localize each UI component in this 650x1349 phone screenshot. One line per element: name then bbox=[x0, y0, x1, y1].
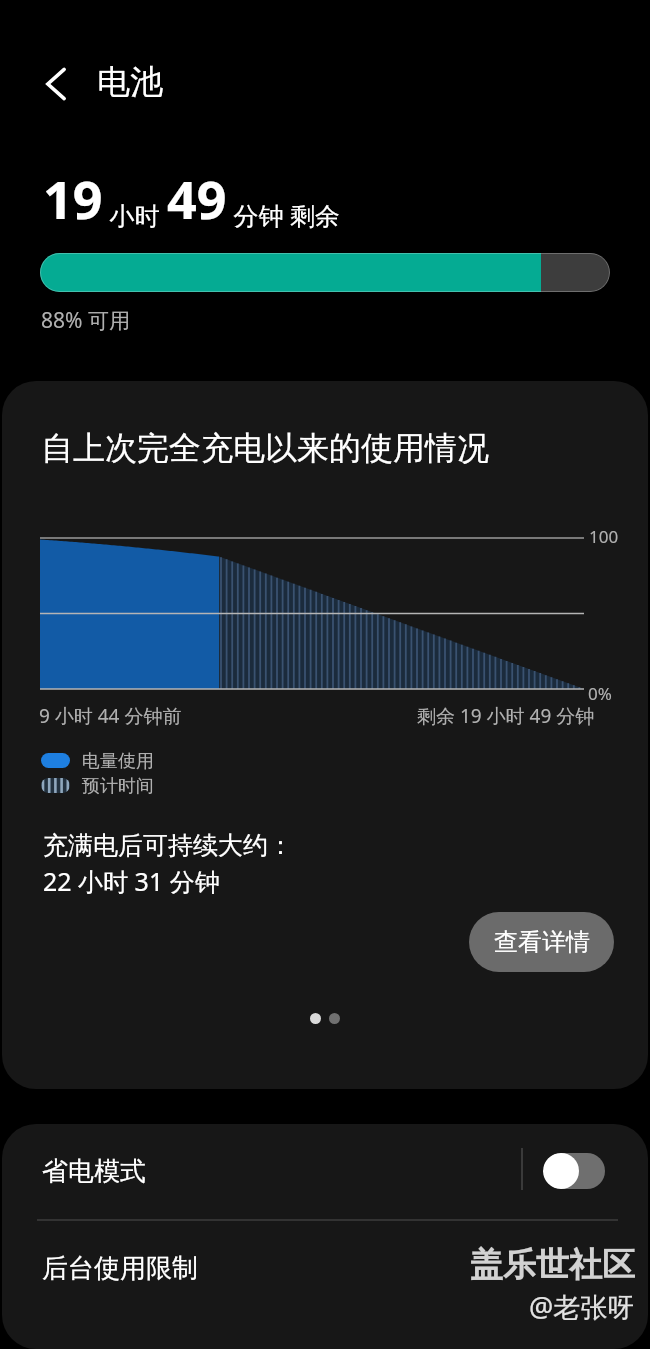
staticText: 88% 可用 bbox=[41, 306, 130, 335]
staticText: 后台使用限制 bbox=[42, 1252, 198, 1285]
staticText: 19 bbox=[43, 163, 103, 234]
button[interactable]: 省电模式 bbox=[2, 1124, 648, 1219]
staticText: @老张呀 bbox=[529, 1288, 635, 1325]
staticText: 小时 bbox=[103, 198, 167, 232]
staticText: 电量使用 bbox=[82, 750, 154, 773]
staticText: 49 bbox=[167, 163, 227, 234]
staticText: 100 bbox=[589, 525, 619, 548]
staticText: 剩余 19 小时 49 分钟 bbox=[417, 703, 595, 729]
button[interactable]: Power saving mode toggle bbox=[543, 1153, 605, 1189]
staticText: 省电模式 bbox=[42, 1155, 146, 1188]
staticText: 0% bbox=[588, 682, 612, 705]
staticText: 电池 bbox=[97, 61, 163, 103]
button[interactable]: 查看详情 bbox=[469, 912, 614, 972]
button[interactable]: 后台使用限制 bbox=[2, 1221, 648, 1316]
staticText: 预计时间 bbox=[82, 775, 154, 798]
staticText: 自上次完全充电以来的使用情况 bbox=[41, 428, 489, 468]
staticText: 22 小时 31 分钟 bbox=[43, 864, 220, 898]
staticText: 9 小时 44 分钟前 bbox=[39, 703, 182, 729]
staticText: 分钟 剩余 bbox=[227, 198, 341, 232]
staticText: 盖乐世社区 bbox=[470, 1244, 635, 1286]
button[interactable]: Back bbox=[20, 48, 92, 120]
staticText: 查看详情 bbox=[494, 927, 590, 957]
staticText: 充满电后可持续大约： bbox=[43, 830, 293, 861]
